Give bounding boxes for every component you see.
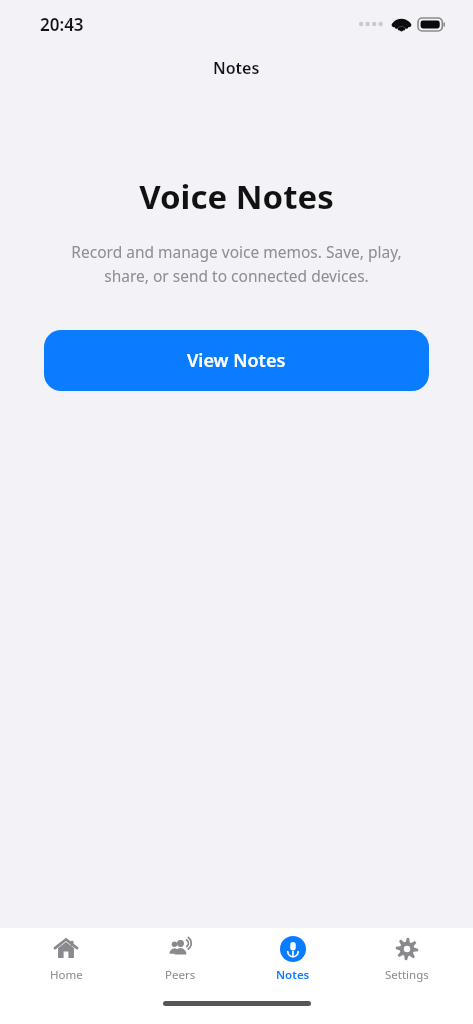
staticText: Record and manage voice memos. Save, pla… [71,241,402,286]
staticText: 20:43 [40,13,84,36]
button[interactable]: Peers [132,936,228,983]
staticText: Notes [213,57,260,79]
button[interactable]: Settings [359,936,455,983]
staticText: Settings [385,967,429,983]
staticText: Peers [165,967,196,983]
button[interactable]: Home [18,936,114,983]
staticText: Voice Notes [139,174,334,219]
button[interactable]: View Notes [44,330,429,391]
button[interactable]: Notes [245,936,341,983]
staticText: Notes [276,967,310,983]
staticText: View Notes [187,348,286,373]
staticText: Home [50,967,83,983]
